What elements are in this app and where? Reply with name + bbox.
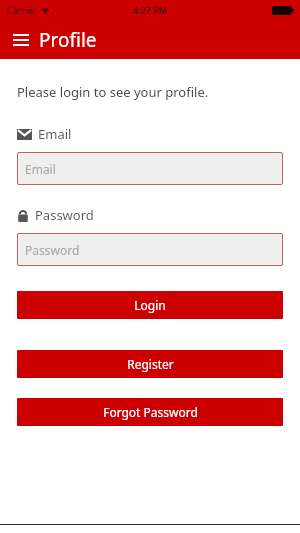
button[interactable]: Email (17, 152, 283, 185)
staticText: Login (134, 297, 166, 313)
button[interactable]: Forgot Password (17, 398, 283, 426)
staticText: 4:27 PM (133, 4, 167, 16)
staticText: Profile (39, 27, 97, 53)
staticText: Password (35, 206, 94, 224)
staticText: Register (127, 356, 174, 372)
button[interactable]: Password (17, 233, 283, 266)
staticText: Forgot Password (103, 404, 198, 420)
staticText: Password (25, 242, 80, 258)
button[interactable]: Login (17, 291, 283, 319)
button[interactable]: Open navigation menu (6, 25, 36, 55)
staticText: Email (25, 161, 56, 177)
staticText: Carrier (7, 4, 37, 16)
button[interactable]: Register (17, 350, 283, 378)
staticText: Email (38, 125, 72, 143)
staticText: Please login to see your profile. (17, 83, 209, 101)
